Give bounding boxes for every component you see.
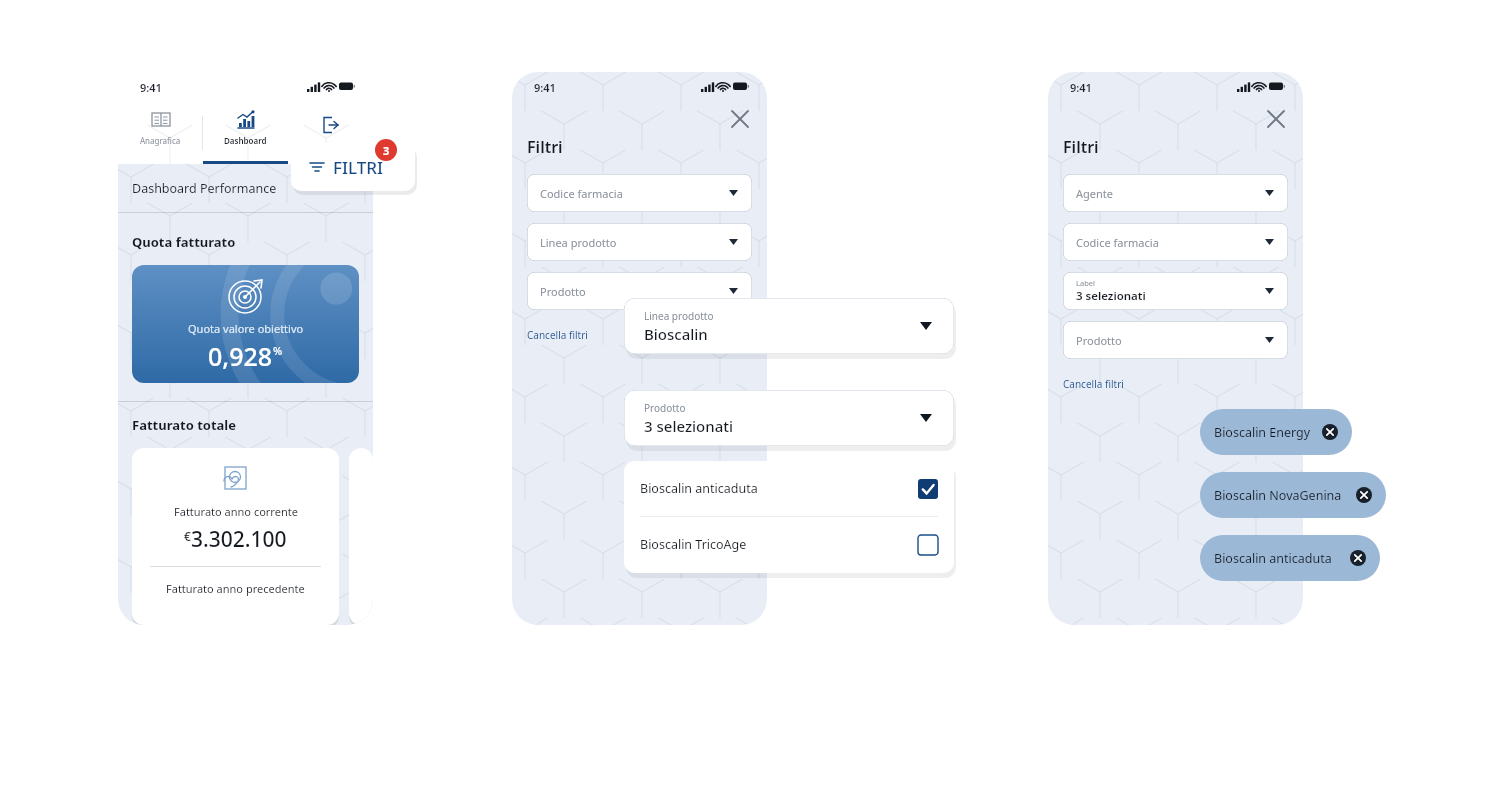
staticText: Bioscalin anticaduta [1214,550,1350,567]
staticText: Bioscalin anticaduta [640,480,918,497]
button[interactable]: Codice farmacia [527,174,752,212]
staticText: Label [1076,278,1095,288]
button[interactable]: Prodotto [1063,321,1288,359]
button[interactable]: Cancella filtri [1063,377,1124,391]
staticText: Fatturato anno precedente [166,581,305,596]
staticText: Fatturato anno corrente [174,504,298,519]
staticText: Linea prodotto [644,309,714,323]
staticText: Bioscalin Energy [1214,424,1322,441]
staticText: Filtri [527,136,563,158]
button[interactable]: Prodotto [527,272,752,310]
staticText: Quota valore obiettivo [188,321,304,336]
staticText: % [273,343,283,358]
staticText: 0,928 [208,339,273,373]
staticText: Anagrafica [140,135,181,146]
other: Rimuovi Bioscalin Energy [1322,424,1338,440]
staticText: Bioscalin [644,324,708,344]
staticText: 3 [383,143,390,158]
staticText: 3 selezionati [644,416,734,436]
staticText: 9:41 [534,80,556,95]
staticText: 3.302.100 [191,525,287,554]
staticText: Filtri [1063,136,1099,158]
button[interactable]: Codice farmacia [1063,223,1288,261]
button[interactable]: Bioscalin Energy [1200,409,1352,455]
staticText: Dashboard [224,135,267,146]
button[interactable]: Dashboard [203,102,288,164]
staticText: 9:41 [140,80,162,95]
staticText: Codice farmacia [540,186,623,201]
other: Rimuovi Bioscalin NovaGenina [1356,487,1372,503]
staticText: Quota fatturato [132,233,236,251]
button[interactable]: Logout [288,102,373,164]
staticText: Bioscalin TricoAge [640,536,918,553]
button[interactable]: Label [1063,272,1288,310]
button[interactable]: Linea prodotto [624,298,954,354]
staticText: € [184,528,191,544]
staticText: Agente [1076,186,1113,201]
other: Rimuovi Bioscalin anticaduta [1350,550,1366,566]
staticText: FILTRI [333,156,384,179]
button[interactable]: FILTRI [291,143,415,191]
staticText: 9:41 [1070,80,1092,95]
button[interactable]: Anagrafica [118,102,203,164]
button[interactable]: Chiudi [1267,110,1285,128]
staticText: Prodotto [1076,333,1122,348]
staticText: Linea prodotto [540,235,617,250]
staticText: 3 selezionati [1076,288,1146,304]
button[interactable]: Bioscalin TricoAge [624,517,954,572]
staticText: Dashboard Performance [132,180,277,197]
staticText: Fatturato totale [132,416,236,434]
button[interactable]: Linea prodotto [527,223,752,261]
staticText: Codice farmacia [1076,235,1159,250]
button[interactable]: Chiudi [731,110,749,128]
button[interactable]: Bioscalin NovaGenina [1200,472,1386,518]
staticText: Prodotto [644,401,686,415]
button[interactable]: Cancella filtri [527,328,588,342]
button[interactable]: Prodotto [624,390,954,446]
staticText: Prodotto [540,284,586,299]
button[interactable]: Bioscalin anticaduta [1200,535,1380,581]
button[interactable]: Bioscalin anticaduta [624,461,954,516]
staticText: Bioscalin NovaGenina [1214,487,1356,504]
button[interactable]: Agente [1063,174,1288,212]
